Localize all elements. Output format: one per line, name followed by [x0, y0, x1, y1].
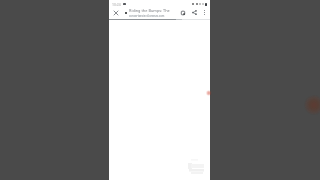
button[interactable]: More options: [200, 8, 209, 17]
staticText: 10:24: [112, 2, 121, 7]
staticText: Riding the Bumps: The B…: [129, 8, 175, 13]
button[interactable]: Share: [190, 8, 199, 17]
button[interactable]: Open in browser: [178, 8, 187, 17]
staticText: concertproject.lorenzo.com: [129, 14, 165, 17]
button[interactable]: Close: [111, 8, 120, 17]
